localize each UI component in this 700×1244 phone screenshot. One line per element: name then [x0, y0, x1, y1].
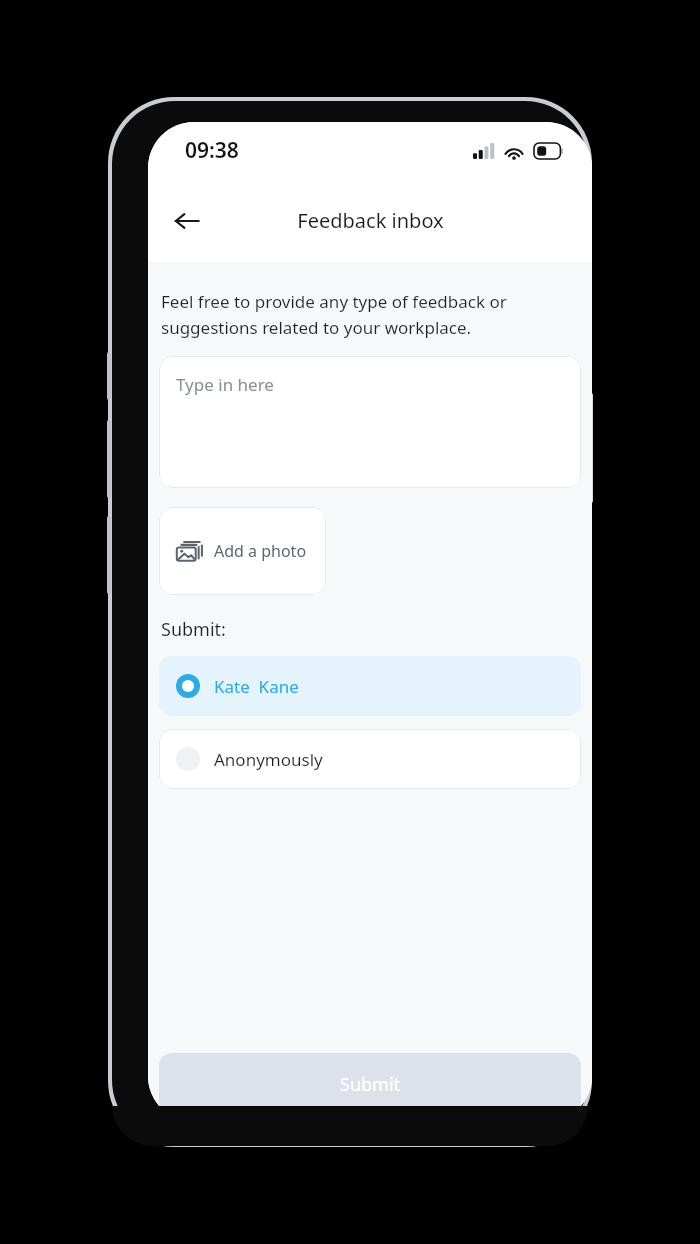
- button[interactable]: Add a photo: [159, 507, 326, 595]
- staticText: Anonymously: [214, 748, 323, 771]
- button[interactable]: Type in here: [159, 356, 581, 488]
- button[interactable]: Anonymously: [159, 729, 581, 789]
- staticText: Feel free to provide any type of feedbac…: [161, 290, 507, 339]
- staticText: Add a photo: [214, 540, 307, 562]
- button[interactable]: Back: [163, 197, 211, 245]
- button[interactable]: Kate Kane: [159, 656, 581, 716]
- staticText: Submit: [340, 1072, 401, 1097]
- staticText: Feedback inbox: [297, 207, 444, 234]
- staticText: 09:38: [185, 136, 239, 165]
- staticText: Type in here: [176, 373, 274, 396]
- button[interactable]: Submit: [159, 1053, 581, 1115]
- staticText: Submit:: [161, 617, 226, 642]
- staticText: Kate Kane: [214, 675, 299, 698]
